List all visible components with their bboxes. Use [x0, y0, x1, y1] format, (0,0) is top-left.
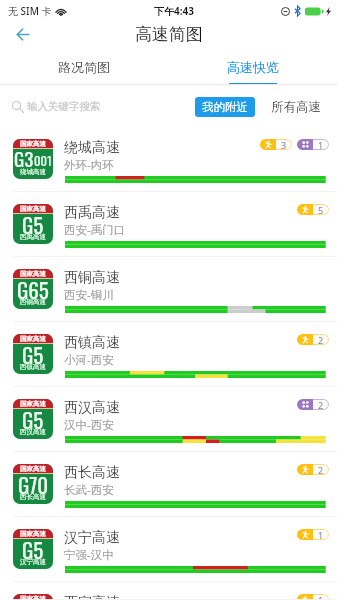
staticText: 绕城高速 — [64, 139, 120, 157]
staticText: G5 — [22, 534, 44, 565]
staticText: 汉宁高速 — [20, 558, 46, 566]
staticText: 外环-内环 — [64, 157, 114, 173]
button[interactable]: 3 — [260, 139, 292, 150]
button[interactable]: 2 — [297, 334, 329, 345]
staticText: 西长高速 — [20, 493, 46, 501]
staticText: 5 — [318, 204, 324, 215]
staticText: 西安-铜川 — [64, 287, 114, 303]
button[interactable]: 国家高速 — [0, 257, 337, 322]
button[interactable]: 所有高速 — [271, 99, 321, 115]
staticText: G65 — [17, 274, 49, 305]
staticText: 2 — [318, 464, 324, 475]
button[interactable]: 我的附近 — [195, 97, 255, 117]
staticText: 1 — [318, 594, 324, 600]
button[interactable]: 1 — [297, 594, 329, 600]
staticText: 绕城高速 — [20, 168, 46, 176]
staticText: 高速简图 — [135, 24, 203, 45]
button[interactable]: 路况简图 — [0, 46, 168, 85]
button[interactable]: 高速快览 — [168, 46, 337, 85]
staticText: 无 SIM 卡 — [8, 4, 52, 18]
button[interactable]: 国家高速 — [0, 582, 337, 600]
staticText: G5 — [22, 209, 44, 240]
staticText: 西汉高速 — [64, 399, 120, 417]
staticText: 下午4:43 — [154, 4, 194, 18]
staticText: G5 — [22, 339, 44, 370]
staticText: 西安-禹门口 — [64, 222, 126, 238]
staticText: 西铜高速 — [20, 298, 46, 306]
staticText: G70 — [18, 469, 49, 500]
staticText: 汉宁高速 — [64, 529, 120, 547]
button[interactable]: Back — [8, 22, 38, 46]
staticText: G3 — [14, 144, 34, 172]
button[interactable]: 国家高速 — [0, 322, 337, 387]
button[interactable]: 1 — [297, 139, 329, 150]
staticText: 高速快览 — [227, 59, 279, 75]
staticText: 2 — [318, 399, 324, 410]
staticText: 小河-西安 — [64, 352, 114, 368]
staticText: 西镇高速 — [20, 363, 46, 371]
staticText: 宁强-汉中 — [64, 547, 114, 563]
staticText: 输入关键字搜索 — [27, 100, 101, 113]
button[interactable]: 国家高速 — [0, 517, 337, 582]
staticText: 国家高速 — [20, 270, 46, 278]
staticText: 长武-西安 — [64, 482, 114, 498]
staticText: G5 — [22, 404, 44, 435]
button[interactable]: 国家高速 — [0, 127, 337, 192]
staticText: 国家高速 — [20, 400, 46, 408]
staticText: 所有高速 — [271, 99, 321, 115]
staticText: 西镇高速 — [64, 334, 120, 352]
staticText: 3 — [281, 139, 287, 150]
button[interactable]: 2 — [297, 399, 329, 410]
staticText: 路况简图 — [58, 59, 110, 75]
staticText: 国家高速 — [20, 595, 46, 600]
staticText: 国家高速 — [20, 205, 46, 213]
staticText: 西禹高速 — [20, 233, 46, 241]
staticText: 西宝高速 — [64, 594, 120, 600]
staticText: 1 — [318, 139, 324, 150]
staticText: 1 — [318, 529, 324, 540]
staticText: 国家高速 — [20, 335, 46, 343]
button[interactable]: 国家高速 — [0, 192, 337, 257]
button[interactable]: 国家高速 — [0, 387, 337, 452]
button[interactable]: 输入关键字搜索 — [12, 100, 101, 113]
staticText: 001 — [34, 151, 52, 170]
button[interactable]: 1 — [297, 529, 329, 540]
staticText: 国家高速 — [20, 140, 46, 148]
staticText: 国家高速 — [20, 465, 46, 473]
button[interactable]: 5 — [297, 204, 329, 215]
staticText: 汉中-西安 — [64, 417, 114, 433]
staticText: 西长高速 — [64, 464, 120, 482]
staticText: 西铜高速 — [64, 269, 120, 287]
button[interactable]: 国家高速 — [0, 452, 337, 517]
staticText: 我的附近 — [202, 100, 248, 114]
button[interactable]: 2 — [297, 464, 329, 475]
staticText: 2 — [318, 334, 324, 345]
staticText: 西汉高速 — [20, 428, 46, 436]
staticText: 西禹高速 — [64, 204, 120, 222]
staticText: 国家高速 — [20, 530, 46, 538]
